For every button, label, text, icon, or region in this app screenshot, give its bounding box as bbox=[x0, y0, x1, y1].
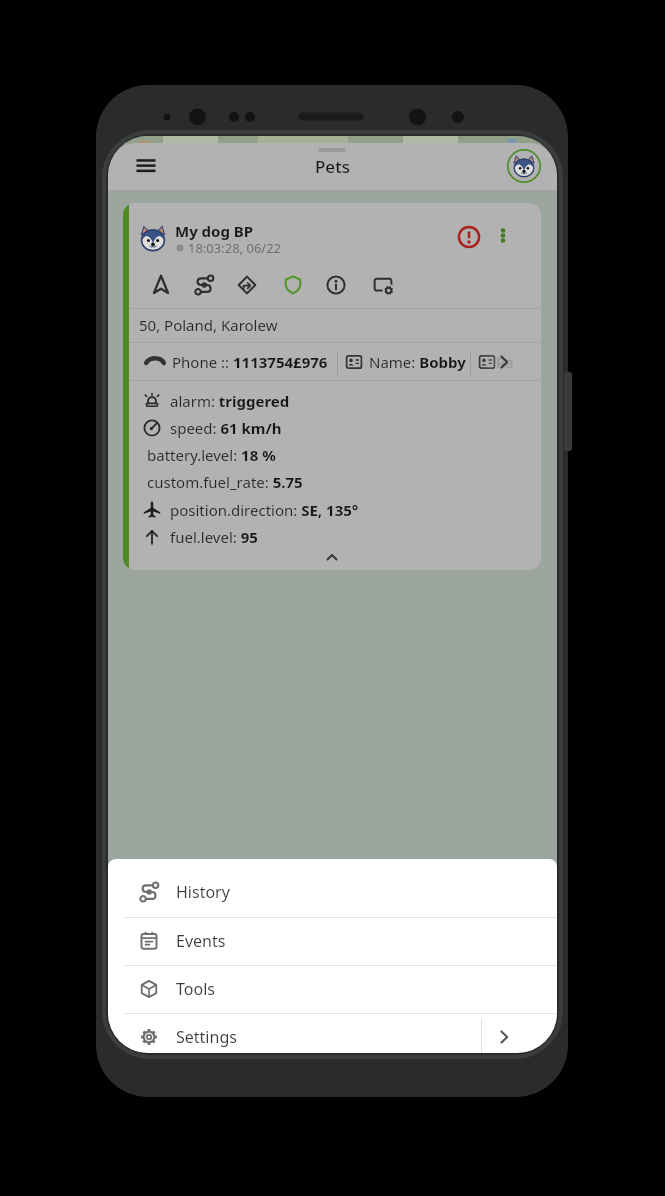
button[interactable] bbox=[134, 154, 158, 178]
button[interactable] bbox=[236, 274, 258, 296]
button[interactable] bbox=[457, 225, 481, 249]
staticText: custom.fuel_rate: 5.75 bbox=[147, 472, 303, 492]
button[interactable] bbox=[372, 274, 394, 296]
staticText: fuel.level: 95 bbox=[170, 527, 258, 547]
staticText: 50, Poland, Karolew bbox=[139, 315, 278, 335]
button[interactable] bbox=[150, 274, 172, 296]
button[interactable] bbox=[323, 550, 341, 562]
button[interactable] bbox=[507, 149, 541, 183]
staticText: History bbox=[176, 881, 230, 903]
button[interactable]: My dog BP bbox=[123, 203, 541, 570]
staticText: Tools bbox=[176, 978, 215, 1000]
staticText: speed: 61 km/h bbox=[170, 418, 282, 438]
button[interactable] bbox=[325, 274, 347, 296]
staticText: Ra bbox=[496, 352, 514, 372]
staticText: alarm: triggered bbox=[170, 391, 290, 411]
staticText: Events bbox=[176, 930, 226, 952]
button[interactable] bbox=[494, 1027, 514, 1047]
button[interactable] bbox=[344, 352, 364, 372]
staticText: battery.level: 18 % bbox=[147, 445, 276, 465]
staticText: 18:03:28, 06/22 bbox=[188, 239, 282, 257]
button[interactable] bbox=[494, 352, 514, 372]
staticText: Settings bbox=[176, 1026, 237, 1048]
button[interactable]: Events bbox=[108, 917, 557, 965]
staticText: Phone :: 1113754£976 bbox=[172, 352, 328, 372]
button[interactable]: History bbox=[108, 868, 557, 916]
button[interactable] bbox=[193, 274, 215, 296]
button[interactable]: Tools bbox=[108, 965, 557, 1013]
button[interactable] bbox=[144, 351, 166, 373]
staticText: My dog BP bbox=[175, 221, 254, 241]
button[interactable] bbox=[282, 274, 304, 296]
staticText: Pets bbox=[315, 155, 350, 178]
button[interactable]: Settings bbox=[108, 1013, 557, 1053]
staticText: Name: Bobby bbox=[369, 352, 466, 372]
button[interactable] bbox=[494, 224, 512, 250]
staticText: position.direction: SE, 135° bbox=[170, 500, 359, 520]
